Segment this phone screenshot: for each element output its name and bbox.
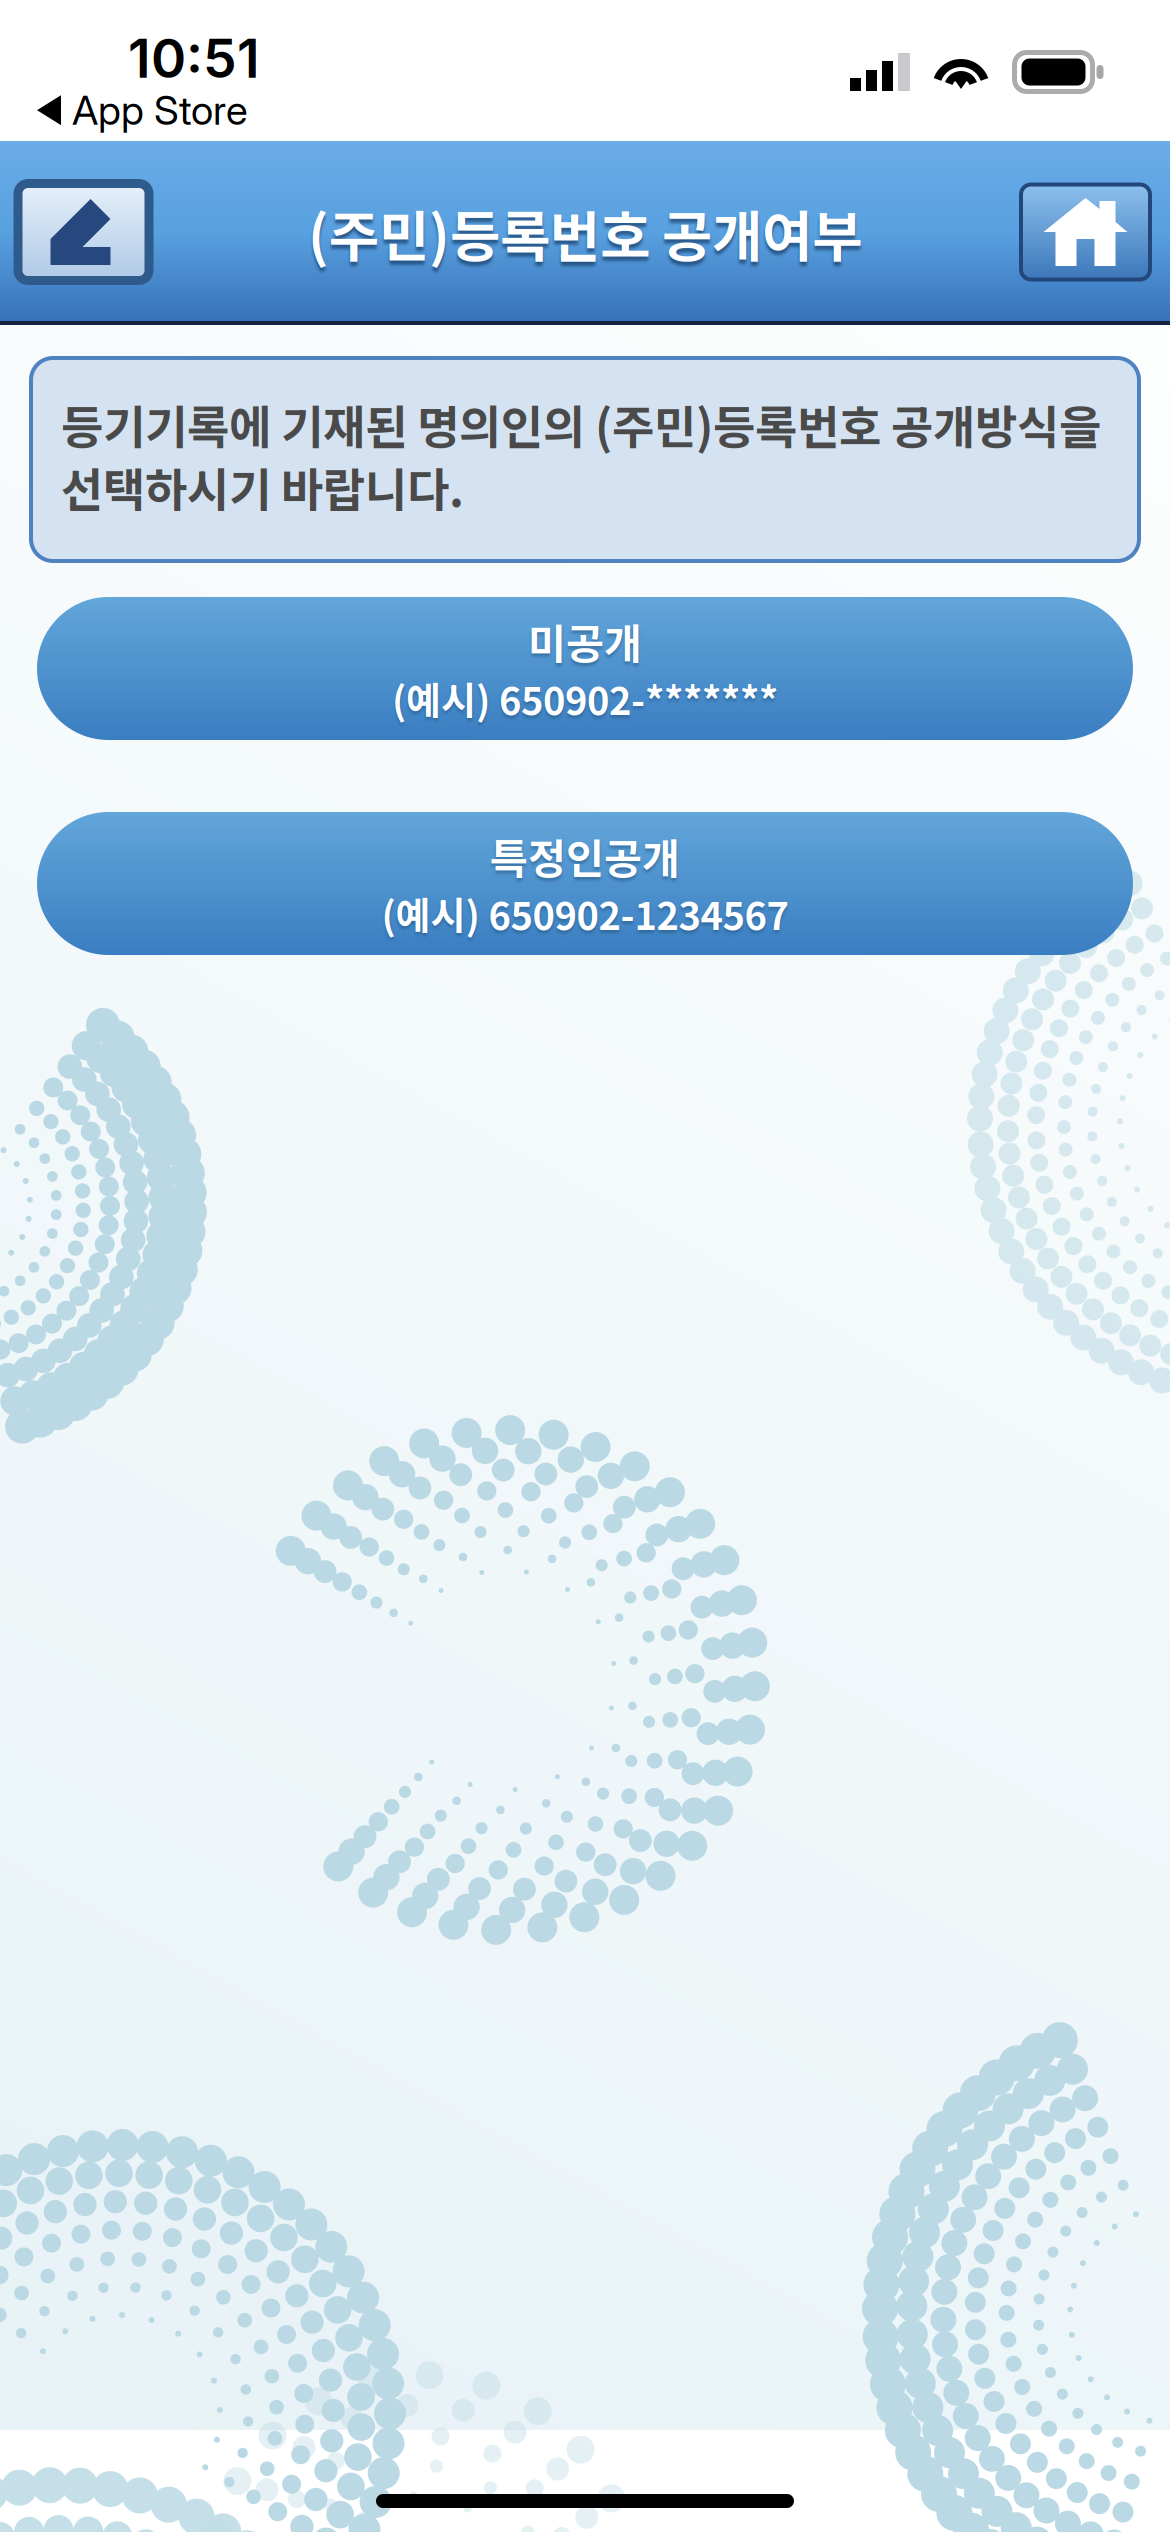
staticText: (예시) 650902-1234567 — [381, 886, 788, 941]
staticText: 미공개 — [528, 611, 642, 671]
button[interactable]: Back — [18, 183, 149, 280]
staticText: 선택하시기 바랍니다. — [61, 454, 464, 520]
button[interactable]: Home — [1021, 184, 1150, 279]
staticText: 10:51 — [128, 26, 260, 90]
button[interactable]: 특정인공개 — [37, 812, 1133, 955]
button[interactable]: App Store — [37, 86, 248, 134]
button[interactable]: 미공개 — [37, 597, 1133, 740]
staticText: (주민)등록번호 공개여부 — [308, 193, 862, 273]
staticText: 특정인공개 — [490, 826, 680, 886]
staticText: (예시) 650902-******* — [392, 671, 778, 726]
staticText: 등기기록에 기재된 명의인의 (주민)등록번호 공개방식을 — [61, 391, 1101, 458]
staticText: App Store — [72, 86, 248, 134]
